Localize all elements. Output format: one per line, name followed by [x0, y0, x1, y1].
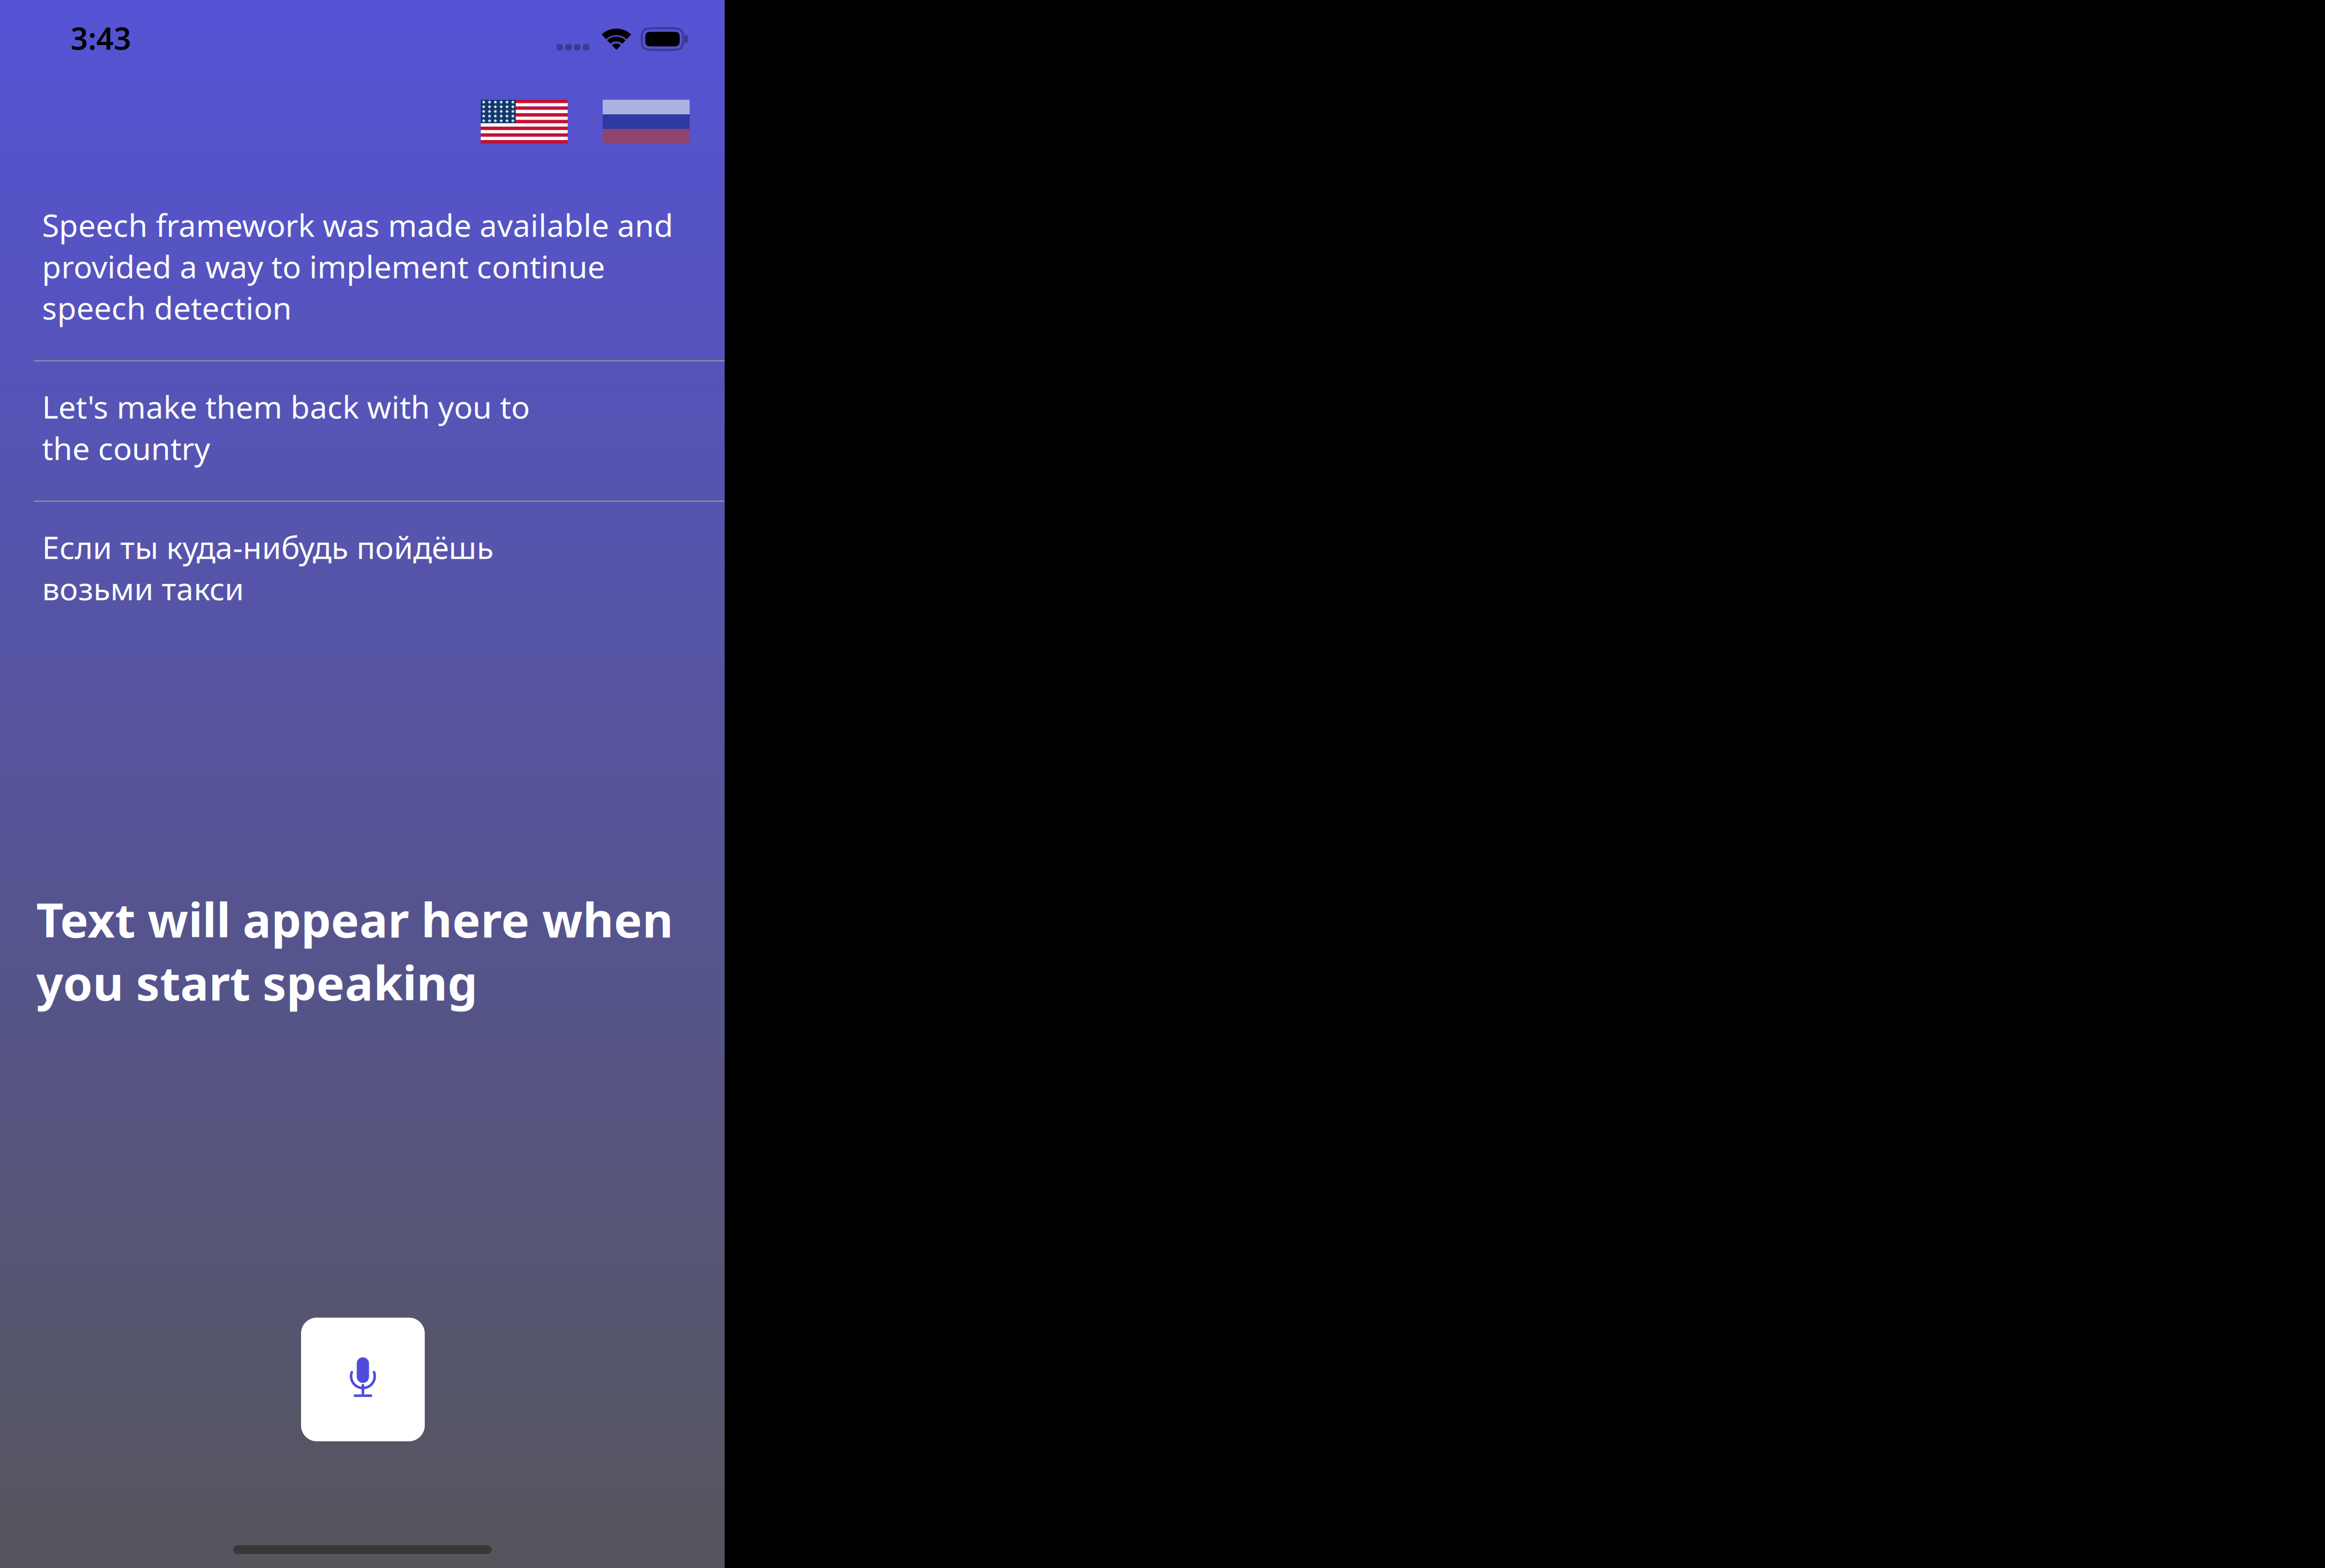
button[interactable]: English	[481, 100, 568, 143]
button[interactable]: Start recording	[301, 1318, 425, 1441]
staticText: 3:43	[71, 18, 131, 58]
button[interactable]: Let's make them back with you to the cou…	[0, 361, 725, 501]
button[interactable]: Russian	[603, 100, 690, 143]
staticText: Speech framework was made available and …	[42, 204, 673, 328]
staticText: Text will appear here when you start spe…	[36, 888, 673, 1014]
button[interactable]: Speech framework was made available and …	[0, 180, 725, 360]
staticText: Let's make them back with you to the cou…	[42, 386, 530, 468]
button[interactable]: Если ты куда-нибудь пойдёшь возьми такси	[0, 502, 725, 641]
staticText: Если ты куда-нибудь пойдёшь возьми такси	[42, 526, 494, 609]
